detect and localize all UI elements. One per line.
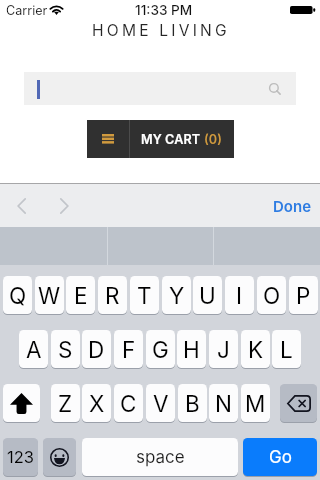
button[interactable]: Done (263, 191, 320, 221)
staticText: U (199, 282, 216, 309)
button[interactable]: Backspace (280, 384, 317, 422)
button[interactable]: B (178, 384, 207, 422)
staticText: Carrier (6, 3, 48, 18)
staticText: (0) (204, 132, 223, 147)
button[interactable]: MY CART (87, 120, 234, 158)
button[interactable]: O (257, 276, 286, 314)
staticText: W (38, 282, 61, 309)
button[interactable]: C (114, 384, 143, 422)
staticText: R (105, 282, 120, 309)
button[interactable]: K (241, 330, 270, 368)
button[interactable]: D (82, 330, 111, 368)
button[interactable]: H (177, 330, 206, 368)
staticText: V (153, 390, 169, 417)
staticText: I (236, 282, 243, 309)
staticText: Go (269, 447, 292, 468)
button[interactable]: Previous field (9, 193, 35, 219)
button[interactable]: Next field (51, 193, 77, 219)
button[interactable]: F (114, 330, 143, 368)
staticText: G (152, 336, 169, 363)
button[interactable]: U (193, 276, 222, 314)
button[interactable]: space (82, 438, 238, 476)
staticText: C (120, 390, 137, 417)
button[interactable]: Shift (3, 384, 40, 422)
staticText: S (58, 336, 73, 363)
button[interactable]: G (146, 330, 175, 368)
staticText: HOME LIVING (92, 21, 230, 39)
button[interactable]: Y (162, 276, 191, 314)
button[interactable]: Z (51, 384, 80, 422)
button[interactable] (24, 72, 296, 105)
button[interactable]: J (209, 330, 238, 368)
staticText: Q (9, 282, 27, 309)
button[interactable]: R (98, 276, 127, 314)
staticText: O (263, 282, 281, 309)
staticText: B (185, 390, 200, 417)
staticText: MY CART (141, 132, 201, 147)
button[interactable]: 123 (3, 438, 38, 476)
button[interactable]: P (289, 276, 318, 314)
button[interactable]: Emoji (43, 438, 76, 476)
staticText: Y (169, 282, 185, 309)
button[interactable]: S (51, 330, 80, 368)
staticText: A (26, 336, 42, 363)
button[interactable]: L (272, 330, 301, 368)
staticText: E (74, 282, 88, 309)
staticText: P (296, 282, 311, 309)
button[interactable]: X (82, 384, 111, 422)
button[interactable]: T (130, 276, 159, 314)
staticText: D (88, 336, 105, 363)
staticText: N (215, 390, 232, 417)
button[interactable]: V (146, 384, 175, 422)
staticText: J (217, 336, 230, 363)
staticText: Z (58, 390, 73, 417)
button[interactable]: N (209, 384, 238, 422)
button[interactable]: M (241, 384, 270, 422)
staticText: T (137, 282, 152, 309)
button[interactable]: Q (3, 276, 32, 314)
button[interactable]: I (225, 276, 254, 314)
staticText: 11:33 PM (135, 2, 193, 18)
staticText: Done (273, 197, 312, 215)
staticText: L (280, 336, 293, 363)
staticText: X (89, 390, 105, 417)
staticText: F (122, 336, 136, 363)
staticText: 123 (7, 447, 34, 467)
staticText: space (136, 447, 185, 468)
staticText: M (245, 390, 266, 417)
button[interactable]: Go (243, 438, 317, 476)
button[interactable]: E (66, 276, 95, 314)
staticText: H (183, 336, 200, 363)
button[interactable]: W (35, 276, 64, 314)
staticText: K (248, 336, 264, 363)
button[interactable]: A (19, 330, 48, 368)
